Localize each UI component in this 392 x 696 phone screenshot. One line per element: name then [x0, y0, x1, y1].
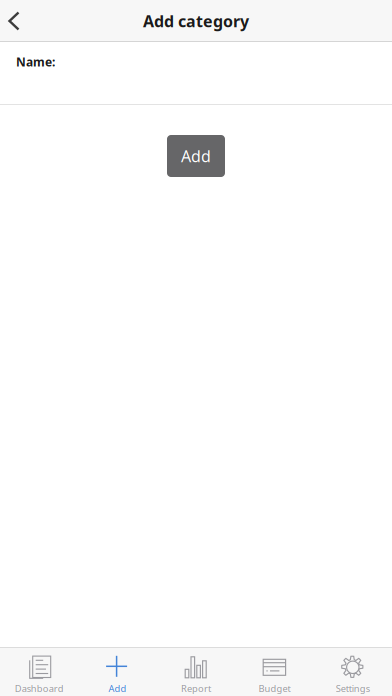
button[interactable]: Budget: [235, 649, 314, 695]
button[interactable]: Back: [0, 0, 20, 42]
button[interactable]: Report: [157, 649, 235, 695]
staticText: Name:: [16, 54, 55, 70]
button[interactable]: Add: [167, 135, 225, 177]
staticText: Report: [181, 682, 211, 695]
staticText: Dashboard: [15, 682, 64, 695]
staticText: Settings: [336, 682, 370, 695]
staticText: Budget: [258, 682, 290, 695]
button[interactable]: Name:: [0, 42, 392, 104]
staticText: Add category: [143, 10, 249, 32]
staticText: Add: [181, 145, 211, 167]
staticText: Add: [109, 682, 127, 695]
button[interactable]: Dashboard: [0, 649, 78, 695]
button[interactable]: Settings: [314, 649, 392, 695]
button[interactable]: Add: [78, 649, 157, 695]
